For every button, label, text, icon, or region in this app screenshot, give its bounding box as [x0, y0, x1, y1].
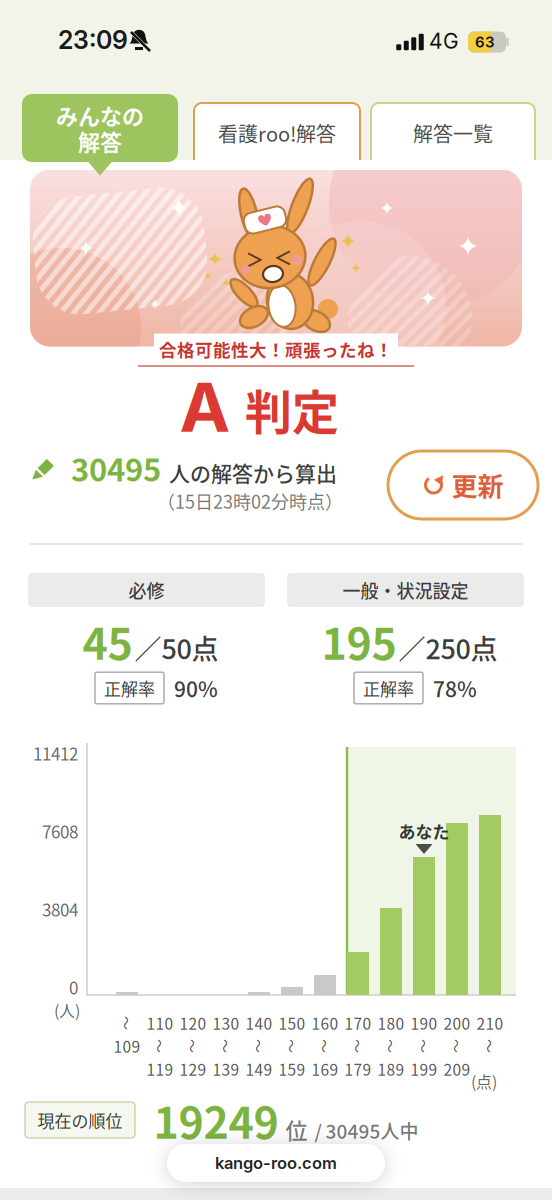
staticText: 判定 [245, 375, 339, 443]
staticText: 139 [212, 1058, 239, 1080]
staticText: 現在の順位 [37, 1108, 122, 1132]
staticText: 149 [245, 1058, 272, 1080]
staticText: 195 [321, 610, 396, 672]
staticText: 〜 [417, 1036, 431, 1056]
staticText: 位 [285, 1113, 307, 1145]
staticText: 正解率 [363, 676, 414, 700]
staticText: 30495 [71, 446, 161, 490]
staticText: 一般・状況設定 [342, 577, 468, 603]
staticText: 23:09 [58, 25, 128, 55]
staticText: ／250点 [398, 628, 497, 667]
staticText: 90% [174, 673, 218, 703]
button[interactable]: 看護roo!解答 [194, 103, 360, 169]
staticText: 19249 [153, 1089, 278, 1151]
staticText: 解答 [78, 125, 122, 157]
staticText: (人) [54, 998, 80, 1022]
staticText: 〜 [351, 1036, 365, 1056]
staticText: 119 [146, 1058, 173, 1080]
staticText: 63 [475, 33, 495, 51]
staticText: 110 [146, 1012, 173, 1034]
staticText: 〜 [318, 1036, 332, 1056]
staticText: kango-roo.com [215, 1153, 337, 1173]
staticText: 人の解答から算出 [169, 457, 337, 487]
staticText: 〜 [450, 1036, 464, 1056]
staticText: 199 [410, 1058, 437, 1080]
staticText: (点) [471, 1069, 497, 1093]
staticText: ＜ [273, 243, 292, 271]
staticText: 3804 [42, 897, 78, 921]
staticText: ＞ [245, 245, 264, 273]
staticText: ／50点 [134, 628, 218, 667]
staticText: 〜 [120, 1013, 134, 1033]
staticText: 140 [245, 1012, 272, 1034]
staticText: 180 [377, 1012, 404, 1034]
staticText: 120 [179, 1012, 206, 1034]
button[interactable]: Address bar [167, 1144, 385, 1182]
staticText: 150 [278, 1012, 305, 1034]
staticText: 解答一覧 [413, 118, 493, 147]
staticText: 〜 [186, 1036, 200, 1056]
staticText: 169 [311, 1058, 338, 1080]
staticText: 200 [443, 1012, 470, 1034]
staticText: 159 [278, 1058, 305, 1080]
staticText: みんなの [56, 99, 144, 131]
button[interactable]: みんなの [22, 94, 178, 162]
staticText: 4G [429, 28, 459, 54]
staticText: （15日23時02分時点） [157, 488, 343, 514]
staticText: 129 [179, 1058, 206, 1080]
staticText: 109 [113, 1035, 140, 1057]
staticText: 11412 [33, 741, 78, 765]
staticText: 210 [476, 1012, 503, 1034]
staticText: 更新 [451, 466, 503, 504]
staticText: 〜 [285, 1036, 299, 1056]
staticText: 〜 [483, 1036, 497, 1056]
staticText: 190 [410, 1012, 437, 1034]
staticText: 45 [82, 610, 132, 672]
staticText: 〜 [153, 1036, 167, 1056]
staticText: / 30495人中 [314, 1117, 418, 1144]
staticText: 7608 [42, 819, 78, 843]
staticText: 〜 [219, 1036, 233, 1056]
staticText: 209 [443, 1058, 470, 1080]
staticText: A [179, 366, 230, 448]
staticText: 合格可能性大！頑張ったね！ [159, 336, 393, 362]
staticText: 160 [311, 1012, 338, 1034]
button[interactable]: 解答一覧 [371, 103, 535, 169]
staticText: 78% [433, 673, 477, 703]
staticText: 189 [377, 1058, 404, 1080]
staticText: 〜 [384, 1036, 398, 1056]
staticText: 必修 [128, 577, 164, 603]
staticText: 130 [212, 1012, 239, 1034]
button[interactable]: 更新 [388, 451, 538, 519]
staticText: あなた [398, 819, 449, 843]
staticText: 170 [344, 1012, 371, 1034]
staticText: 0 [69, 975, 78, 999]
staticText: 看護roo!解答 [218, 118, 336, 147]
staticText: 179 [344, 1058, 371, 1080]
staticText: 正解率 [104, 676, 155, 700]
staticText: 〜 [252, 1036, 266, 1056]
